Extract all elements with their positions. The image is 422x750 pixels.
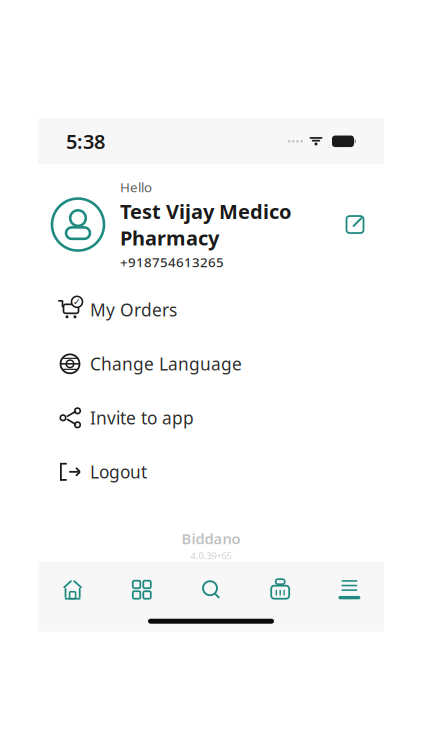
button[interactable]: Search (176, 568, 246, 612)
button[interactable]: Home (38, 568, 107, 612)
button[interactable]: Invite to app (38, 391, 384, 445)
button[interactable]: ✓ (38, 283, 384, 337)
button[interactable]: Edit profile (336, 206, 374, 244)
staticText: Test Vijay Medico Pharmacy (120, 198, 292, 251)
button[interactable]: Catalog (107, 568, 176, 612)
button[interactable]: Cart (246, 568, 315, 612)
staticText: 4.0.39+65 (190, 549, 231, 562)
staticText: Hello (120, 178, 152, 196)
staticText: Change Language (90, 352, 242, 375)
staticText: 5:38 (66, 128, 105, 155)
staticText: Biddano (181, 529, 240, 548)
staticText: Logout (90, 460, 147, 483)
staticText: ✓ (73, 296, 81, 307)
staticText: +918754613265 (120, 253, 224, 271)
button[interactable]: Change Language (38, 337, 384, 391)
button[interactable]: Menu (315, 568, 384, 612)
button[interactable]: Logout (38, 445, 384, 499)
staticText: My Orders (90, 298, 177, 321)
staticText: Invite to app (90, 406, 194, 429)
